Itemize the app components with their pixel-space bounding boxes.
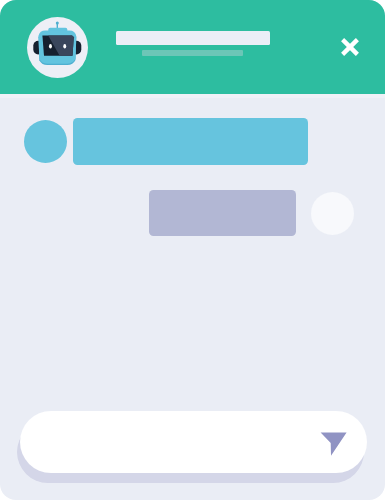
button[interactable]: Send: [313, 418, 361, 466]
button[interactable]: Close chat: [333, 30, 367, 64]
button[interactable]: Sender avatar: [24, 120, 67, 163]
button[interactable]: [73, 118, 308, 165]
button[interactable]: Your avatar: [311, 192, 354, 235]
button[interactable]: Chat bot avatar: [27, 17, 88, 78]
button[interactable]: Type a message: [20, 411, 367, 473]
